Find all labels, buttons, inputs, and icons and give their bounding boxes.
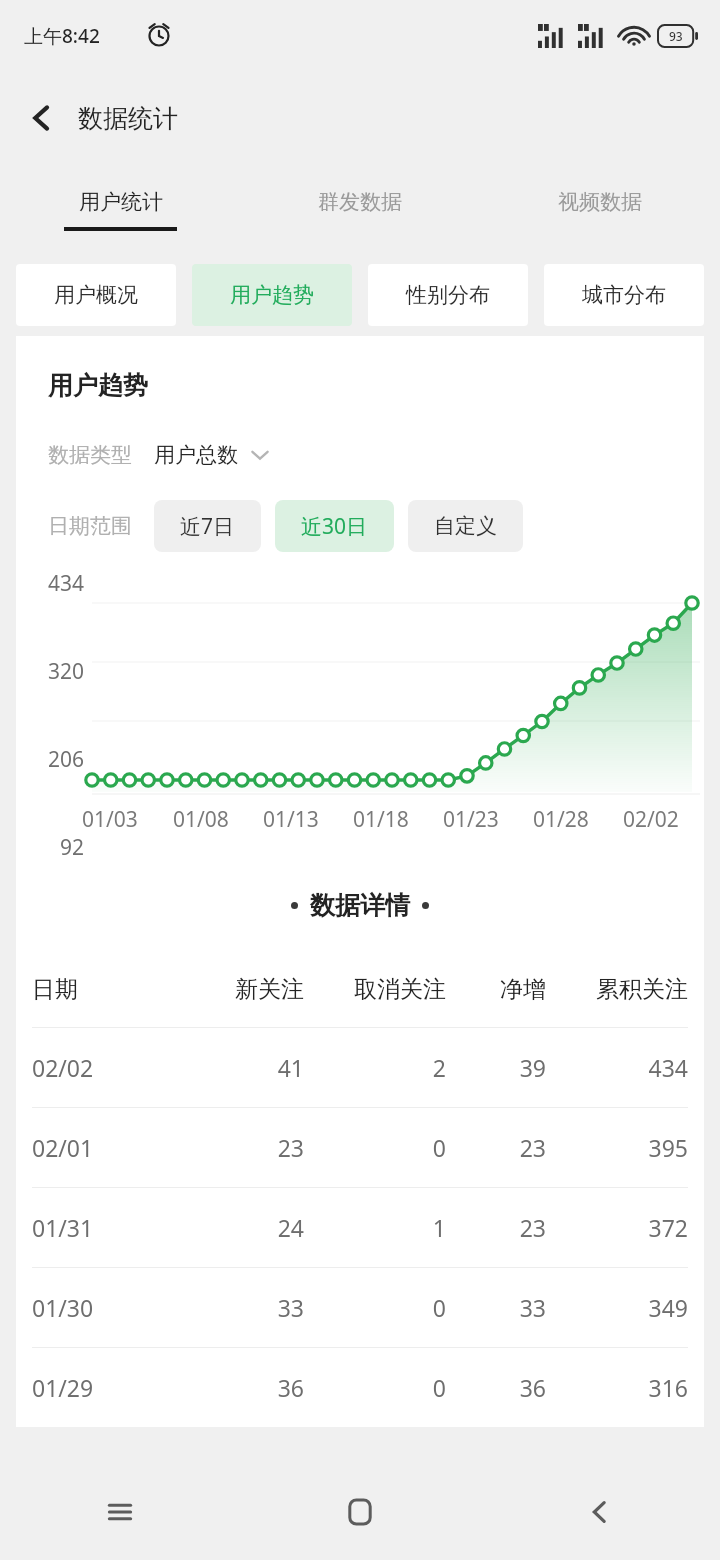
staticText: 206 [22,745,84,774]
staticText: 1 [304,1212,446,1243]
staticText: 新关注 [173,975,304,1004]
button[interactable]: 用户统计 [0,164,240,256]
button[interactable]: 01/29 [32,1348,688,1427]
staticText: 01/28 [533,805,589,834]
staticText: 01/31 [32,1212,173,1243]
staticText: 23 [446,1132,546,1163]
staticText: 434 [546,1052,688,1083]
staticText: 用户总数 [154,442,238,468]
staticText: 39 [446,1052,546,1083]
button[interactable]: 用户概况 [16,264,176,326]
staticText: 434 [22,569,84,598]
staticText: 日期范围 [48,513,132,539]
staticText: 01/29 [32,1372,173,1403]
staticText: 自定义 [434,513,497,539]
staticText: 372 [546,1212,688,1243]
button[interactable]: Back [14,90,70,146]
staticText: 性别分布 [406,282,490,308]
staticText: 395 [546,1132,688,1163]
button[interactable]: 城市分布 [544,264,704,326]
staticText: 33 [446,1292,546,1323]
staticText: 01/23 [443,805,499,834]
button[interactable]: 01/31 [32,1188,688,1267]
button[interactable]: 02/02 [32,1028,688,1107]
staticText: 上午8:42 [24,23,100,49]
staticText: 近7日 [180,512,235,541]
button[interactable]: 用户趋势 [192,264,352,326]
staticText: 用户趋势 [230,282,314,308]
staticText: 41 [173,1052,304,1083]
staticText: 93 [669,28,683,44]
button[interactable]: 01/30 [32,1268,688,1347]
button[interactable]: Home [240,1464,480,1560]
staticText: 36 [173,1372,304,1403]
staticText: 0 [304,1132,446,1163]
staticText: 23 [446,1212,546,1243]
staticText: 近30日 [301,512,368,541]
staticText: 36 [446,1372,546,1403]
staticText: 城市分布 [582,282,666,308]
button[interactable]: 视频数据 [480,164,720,256]
staticText: 数据统计 [78,103,178,134]
staticText: 数据详情 [310,890,410,921]
staticText: 0 [304,1292,446,1323]
staticText: 33 [173,1292,304,1323]
staticText: 净增 [446,975,546,1004]
staticText: 用户统计 [79,189,163,215]
staticText: 用户概况 [54,282,138,308]
staticText: 数据类型 [48,442,132,468]
staticText: 2 [304,1052,446,1083]
button[interactable]: 性别分布 [368,264,528,326]
button[interactable]: 近30日 [275,500,394,552]
staticText: 349 [546,1292,688,1323]
button[interactable]: Back [480,1464,720,1560]
staticText: 01/18 [353,805,409,834]
staticText: 92 [22,833,84,862]
staticText: 日期 [32,975,173,1004]
staticText: 24 [173,1212,304,1243]
staticText: 01/03 [82,805,138,834]
staticText: 01/30 [32,1292,173,1323]
staticText: 用户趋势 [48,370,148,401]
staticText: 01/08 [173,805,229,834]
button[interactable]: 用户总数 [154,442,270,468]
button[interactable]: 自定义 [408,500,523,552]
staticText: 23 [173,1132,304,1163]
staticText: 02/02 [32,1052,173,1083]
staticText: 316 [546,1372,688,1403]
staticText: 02/01 [32,1132,173,1163]
staticText: 0 [304,1372,446,1403]
staticText: 01/13 [263,805,319,834]
staticText: 取消关注 [304,975,446,1004]
button[interactable]: 近7日 [154,500,261,552]
staticText: 累积关注 [546,975,688,1004]
staticText: 02/02 [623,805,679,834]
staticText: 视频数据 [558,189,642,215]
staticText: 群发数据 [318,189,402,215]
button[interactable]: 群发数据 [240,164,480,256]
button[interactable]: 02/01 [32,1108,688,1187]
staticText: 320 [22,657,84,686]
button[interactable]: Recents [0,1464,240,1560]
